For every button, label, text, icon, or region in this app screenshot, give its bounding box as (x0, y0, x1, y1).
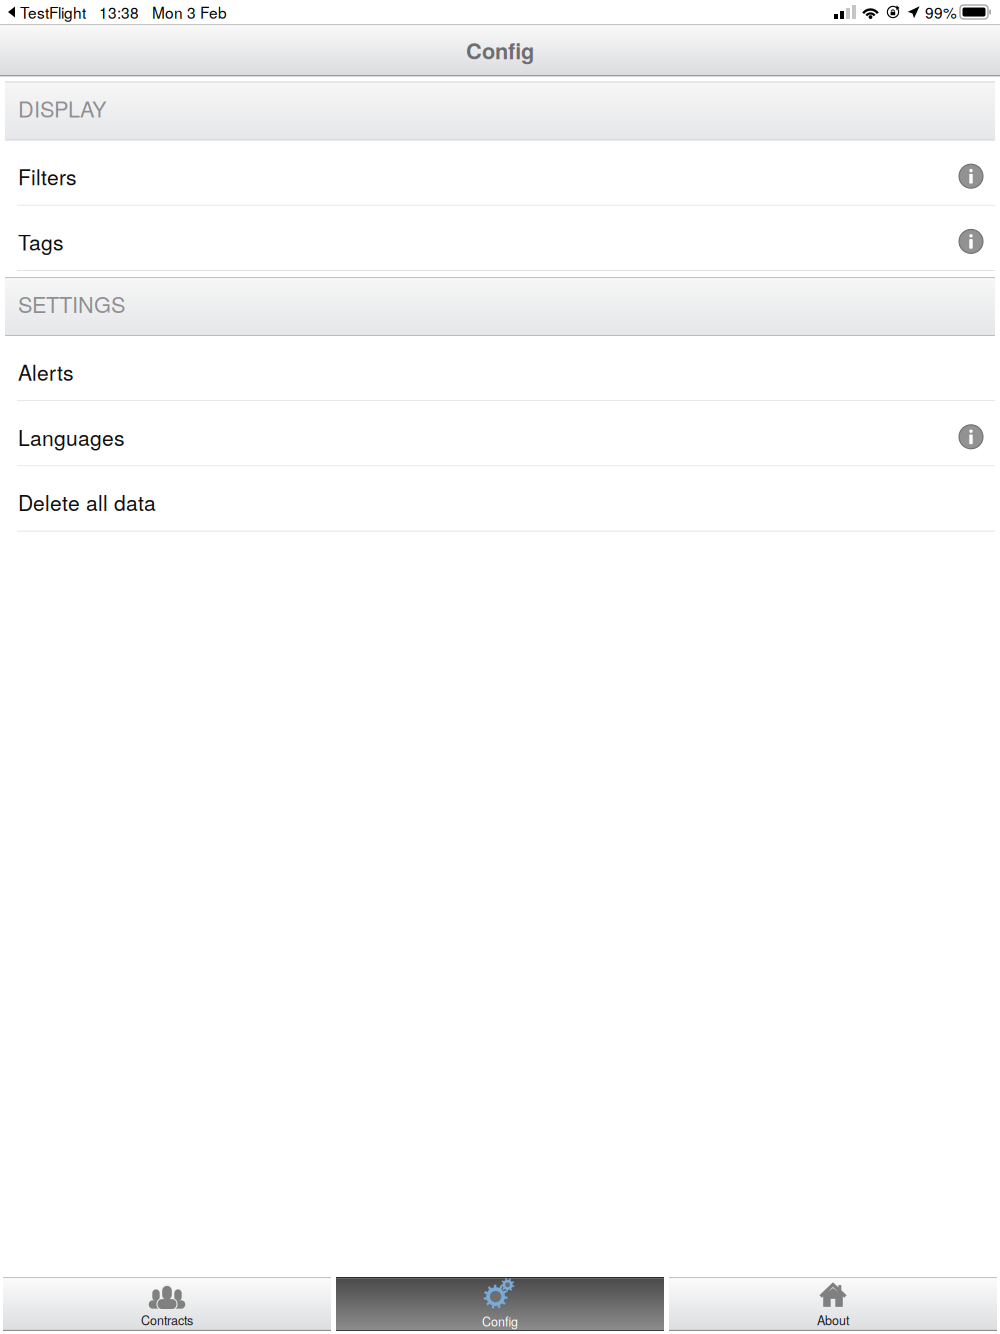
button[interactable]: Delete all data (0, 466, 1000, 532)
staticText: 13:38 (99, 1, 139, 23)
staticText: Contracts (141, 1311, 193, 1329)
button[interactable]: More info about this setting (949, 154, 993, 198)
staticText: Config (466, 35, 534, 66)
staticText: Tags (18, 226, 64, 256)
staticText: DISPLAY (18, 92, 106, 124)
staticText: Config (482, 1312, 518, 1330)
button[interactable]: Contracts (3, 1277, 331, 1331)
button[interactable]: Languages (0, 401, 1000, 466)
staticText: 99% (925, 1, 957, 23)
staticText: Mon 3 Feb (152, 1, 227, 23)
staticText: Languages (18, 422, 125, 452)
staticText: Delete all data (18, 487, 156, 517)
staticText: SETTINGS (18, 288, 125, 319)
button[interactable]: More info about this setting (949, 219, 993, 263)
button[interactable]: More info about this setting (949, 415, 993, 459)
staticText: Filters (18, 161, 77, 191)
button[interactable]: Tags (0, 206, 1000, 271)
staticText: Alerts (18, 356, 74, 387)
staticText: About (817, 1311, 849, 1329)
staticText: TestFlight (20, 1, 86, 23)
button[interactable]: Config (336, 1277, 664, 1331)
button[interactable]: Alerts (0, 336, 1000, 401)
button[interactable]: About (669, 1277, 997, 1331)
button[interactable]: Filters (0, 141, 1000, 206)
